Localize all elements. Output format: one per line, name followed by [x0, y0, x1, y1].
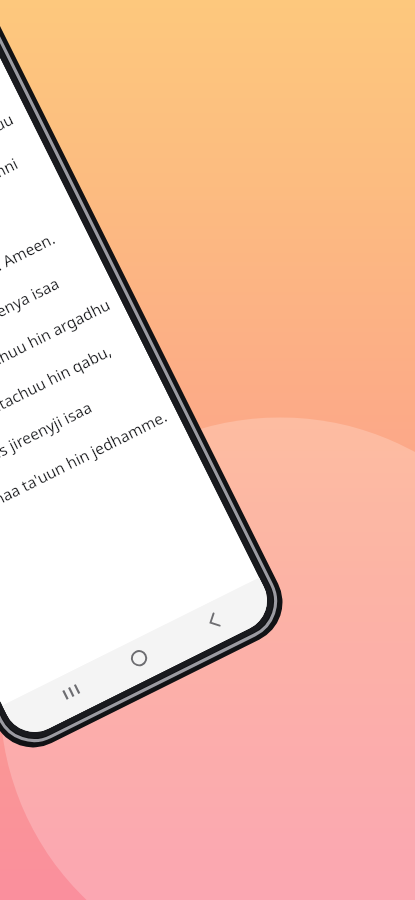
button[interactable]: Phone app preview artwork [0, 0, 415, 900]
